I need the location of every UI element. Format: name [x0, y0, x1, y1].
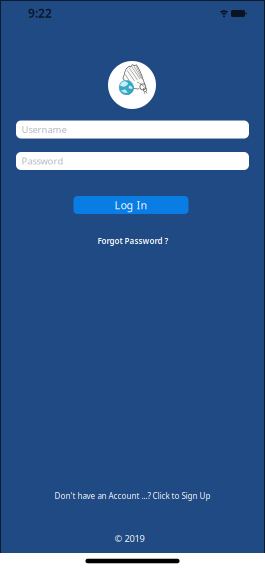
staticText: Username — [21, 123, 66, 136]
staticText: Don't have an Account ...? Click to Sign… — [54, 491, 210, 501]
button[interactable]: Forgot Password ? — [97, 236, 168, 246]
button[interactable]: Username — [16, 120, 249, 138]
staticText: Log In — [114, 198, 147, 212]
staticText: 9:22 — [28, 5, 52, 21]
staticText: Forgot Password ? — [97, 236, 168, 246]
staticText: © 2019 — [114, 532, 144, 545]
staticText: Password — [21, 155, 63, 167]
button[interactable]: Log In — [73, 196, 188, 214]
button[interactable]: Don't have an Account ...? Click to Sign… — [54, 491, 210, 501]
button[interactable]: Password — [16, 152, 249, 170]
